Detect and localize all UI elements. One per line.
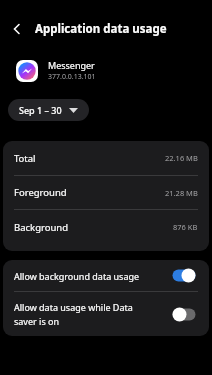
staticText: Foreground — [14, 186, 67, 199]
staticText: 876 KB — [173, 222, 198, 232]
staticText: 377.0.0.13.101 — [48, 72, 96, 82]
staticText: 21.28 MB — [165, 188, 198, 198]
button[interactable] — [0, 12, 34, 46]
staticText: Background — [14, 221, 69, 234]
staticText: Allow data usage while Data saver is on — [14, 301, 133, 327]
button[interactable]: Sep 1 – 30 — [8, 99, 89, 121]
staticText: Sep 1 – 30 — [19, 104, 62, 116]
staticText: Total — [14, 152, 36, 165]
staticText: Messenger — [48, 59, 95, 71]
staticText: Allow background data usage — [14, 270, 140, 282]
staticText: 22.16 MB — [165, 153, 198, 163]
button[interactable]: Allow data usage while Data saver is on — [3, 292, 209, 336]
button[interactable]: Allow background data usage — [3, 260, 209, 291]
staticText: Application data usage — [35, 21, 167, 37]
